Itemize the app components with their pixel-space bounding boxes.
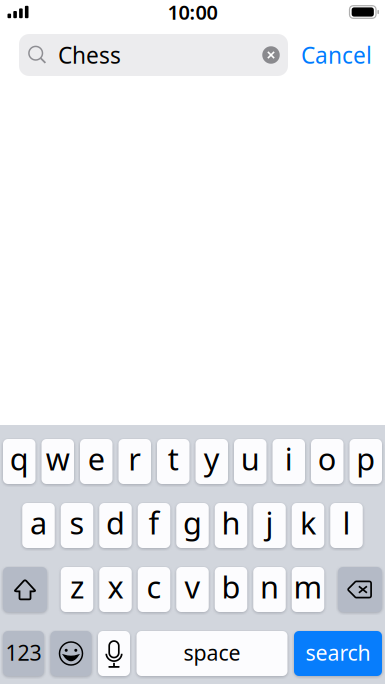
button[interactable]: d <box>99 503 132 548</box>
button[interactable]: j <box>253 503 286 548</box>
staticText: j <box>265 502 273 543</box>
button[interactable]: i <box>272 439 305 484</box>
staticText: x <box>107 566 123 607</box>
staticText: w <box>46 438 70 479</box>
staticText: a <box>30 502 47 543</box>
button[interactable]: space <box>136 631 287 676</box>
staticText: Chess <box>58 40 121 70</box>
staticText: u <box>241 438 260 479</box>
staticText: m <box>293 566 322 607</box>
button[interactable]: Cancel <box>288 34 385 76</box>
button[interactable]: v <box>176 567 209 612</box>
button[interactable]: k <box>292 503 324 548</box>
staticText: t <box>168 438 179 479</box>
button[interactable]: n <box>253 567 286 612</box>
staticText: Cancel <box>301 40 372 70</box>
staticText: n <box>260 566 279 607</box>
staticText: d <box>106 502 125 543</box>
button[interactable]: o <box>311 439 343 484</box>
button[interactable]: z <box>61 567 93 612</box>
staticText: o <box>318 438 337 479</box>
button[interactable]: y <box>195 439 228 484</box>
button[interactable]: b <box>215 567 247 612</box>
button[interactable]: Emoji <box>50 631 91 676</box>
button[interactable]: Shift <box>3 567 47 612</box>
staticText: k <box>300 502 316 543</box>
staticText: g <box>183 502 202 543</box>
button[interactable]: Delete <box>338 567 382 612</box>
button[interactable]: h <box>215 503 247 548</box>
button[interactable]: p <box>349 439 382 484</box>
staticText: h <box>221 502 240 543</box>
button[interactable]: x <box>99 567 132 612</box>
button[interactable]: s <box>61 503 93 548</box>
staticText: c <box>146 566 161 607</box>
staticText: e <box>88 438 105 479</box>
staticText: v <box>184 566 200 607</box>
button[interactable]: g <box>176 503 209 548</box>
button[interactable]: u <box>234 439 266 484</box>
staticText: r <box>128 438 141 479</box>
button[interactable]: f <box>138 503 170 548</box>
button[interactable]: q <box>3 439 35 484</box>
button[interactable]: search <box>294 631 382 676</box>
button[interactable]: l <box>330 503 363 548</box>
button[interactable]: t <box>157 439 189 484</box>
staticText: l <box>342 502 350 543</box>
staticText: f <box>148 502 159 543</box>
staticText: z <box>70 566 84 607</box>
button[interactable]: w <box>41 439 74 484</box>
button[interactable]: m <box>292 567 324 612</box>
staticText: search <box>305 638 370 667</box>
button[interactable]: a <box>22 503 55 548</box>
button[interactable]: r <box>118 439 151 484</box>
staticText: y <box>204 438 220 479</box>
staticText: 10:00 <box>167 0 217 25</box>
button[interactable]: Clear text <box>254 34 288 76</box>
staticText: b <box>221 566 240 607</box>
staticText: i <box>285 438 293 479</box>
button[interactable]: Dictate <box>98 631 130 676</box>
staticText: s <box>69 502 84 543</box>
staticText: p <box>356 438 375 479</box>
staticText: q <box>10 438 29 479</box>
staticText: 123 <box>5 638 41 667</box>
button[interactable]: e <box>80 439 112 484</box>
button[interactable]: c <box>138 567 170 612</box>
button[interactable]: 123 <box>3 631 44 676</box>
staticText: space <box>183 638 240 667</box>
